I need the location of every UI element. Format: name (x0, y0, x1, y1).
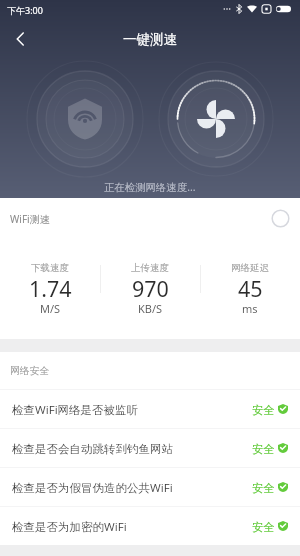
staticText: 上传速度 (131, 262, 169, 274)
button[interactable]: 检查WiFi网络是否被监听 (0, 390, 300, 428)
button[interactable]: Back (0, 19, 40, 59)
staticText: M/S (40, 301, 61, 316)
staticText: ms (242, 301, 258, 316)
staticText: 安全 (252, 520, 275, 534)
staticText: 安全 (252, 442, 275, 456)
staticText: 检查WiFi网络是否被监听 (12, 402, 139, 418)
button[interactable]: WiFi测速 (0, 198, 300, 239)
staticText: 1.74 (29, 274, 72, 303)
staticText: 正在检测网络速度... (104, 180, 196, 194)
button[interactable]: 检查是否为加密的WiFi (0, 507, 300, 545)
button[interactable]: 检查是否会自动跳转到钓鱼网站 (0, 429, 300, 467)
staticText: 970 (132, 274, 169, 303)
staticText: 检查是否为加密的WiFi (12, 519, 127, 535)
staticText: 安全 (252, 403, 275, 417)
staticText: 检查是否为假冒伪造的公共WiFi (12, 480, 173, 496)
staticText: 一键测速 (123, 31, 177, 48)
staticText: WiFi测速 (10, 212, 50, 226)
staticText: KB/S (138, 301, 163, 316)
staticText: 检查是否会自动跳转到钓鱼网站 (12, 442, 173, 456)
staticText: 45 (238, 274, 263, 303)
staticText: 下载速度 (31, 262, 69, 274)
button[interactable]: 检查是否为假冒伪造的公共WiFi (0, 468, 300, 506)
staticText: 下午3:00 (7, 4, 43, 16)
staticText: 网络延迟 (231, 262, 269, 274)
staticText: 安全 (252, 481, 275, 495)
staticText: 网络安全 (10, 365, 50, 377)
